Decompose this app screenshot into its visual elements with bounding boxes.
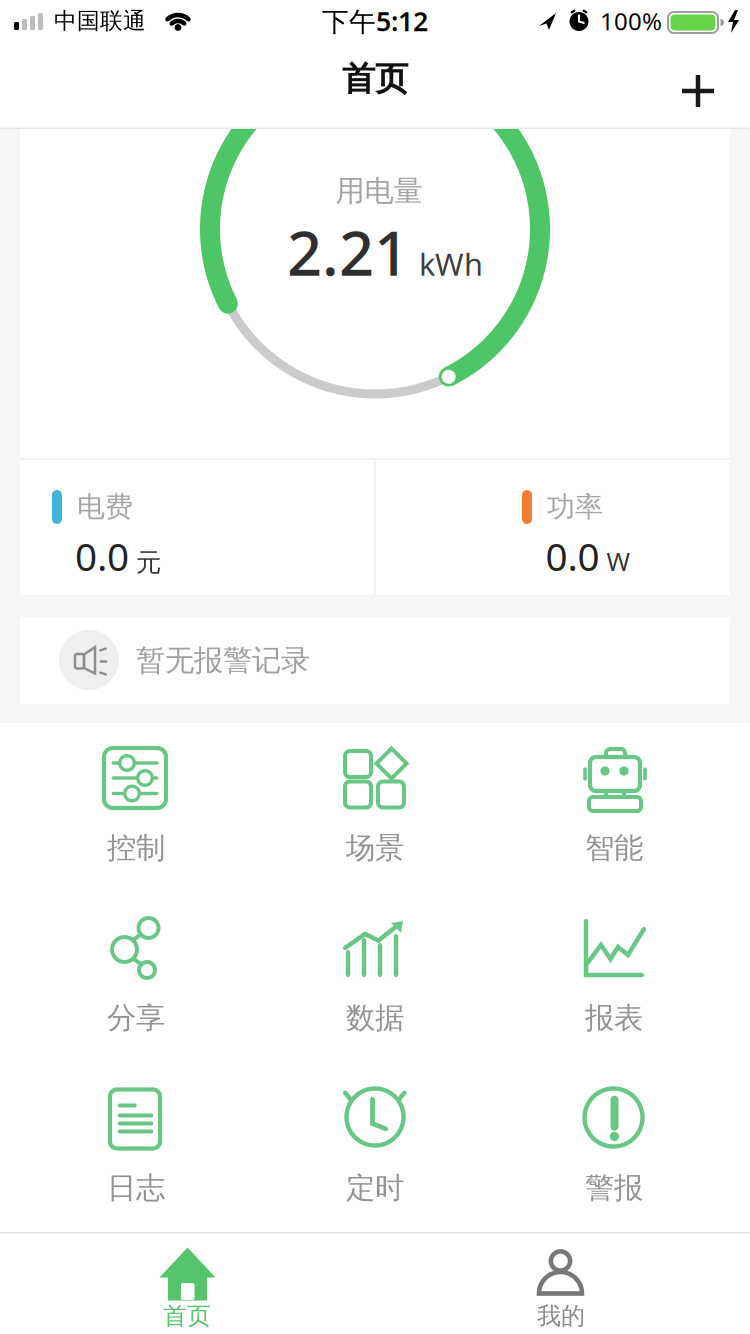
staticText: 功率 [547, 490, 603, 524]
staticText: 暂无报警记录 [136, 642, 310, 678]
staticText: 日志 [107, 1170, 165, 1206]
staticText: 智能 [585, 830, 643, 866]
staticText: 2.21 [287, 211, 409, 293]
button[interactable]: 暂无报警记录 [20, 617, 730, 704]
staticText: 100% [600, 5, 662, 37]
staticText: 电费 [77, 490, 133, 524]
staticText: 场景 [346, 830, 404, 866]
button[interactable]: 添加 [666, 59, 730, 123]
button[interactable]: 场景 [290, 736, 460, 870]
button[interactable]: 分享 [51, 906, 221, 1040]
staticText: 报表 [585, 1000, 643, 1036]
button[interactable]: 报表 [529, 906, 699, 1040]
staticText: 首页 [163, 1301, 211, 1331]
staticText: 首页 [342, 58, 408, 99]
staticText: 元 [136, 547, 161, 578]
staticText: 控制 [107, 830, 165, 866]
staticText: 定时 [346, 1170, 404, 1206]
staticText: 警报 [585, 1170, 643, 1206]
staticText: 分享 [107, 1000, 165, 1036]
button[interactable]: 首页 [0, 1234, 375, 1334]
button[interactable]: 定时 [290, 1076, 460, 1210]
staticText: 我的 [537, 1301, 585, 1331]
staticText: 数据 [346, 1000, 404, 1036]
button[interactable]: 控制 [51, 736, 221, 870]
button[interactable]: 警报 [529, 1076, 699, 1210]
button[interactable]: 数据 [290, 906, 460, 1040]
staticText: W [606, 544, 630, 578]
staticText: 下午5:12 [322, 3, 428, 39]
staticText: 0.0 [545, 530, 599, 582]
button[interactable]: 我的 [375, 1234, 750, 1334]
button[interactable]: 智能 [529, 736, 699, 870]
staticText: 0.0 [75, 530, 129, 582]
staticText: 中国联通 [54, 7, 146, 35]
staticText: 用电量 [335, 173, 422, 209]
staticText: kWh [419, 243, 483, 284]
button[interactable]: 日志 [51, 1076, 221, 1210]
